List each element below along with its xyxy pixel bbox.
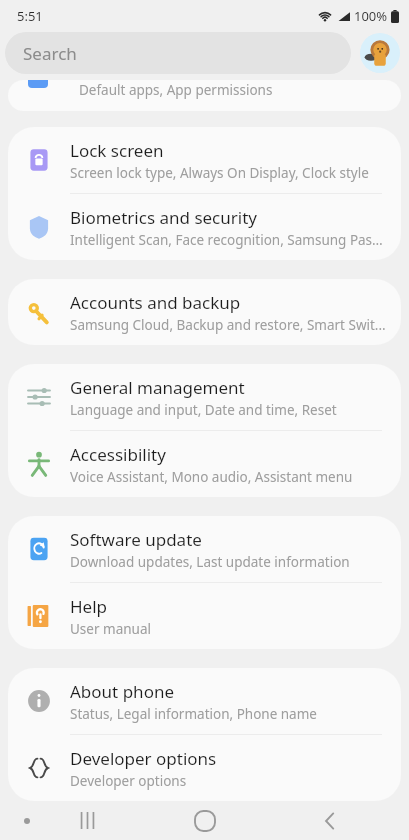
staticText: Accounts and backup — [70, 291, 241, 314]
staticText: Language and input, Date and time, Reset — [70, 401, 337, 419]
staticText: 100% — [354, 7, 388, 25]
button[interactable]: Help — [8, 583, 401, 649]
staticText: About phone — [70, 680, 175, 703]
button[interactable]: Accounts and backup — [8, 279, 401, 345]
button[interactable]: General management — [8, 364, 401, 430]
staticText: User manual — [70, 620, 151, 638]
staticText: Accessibility — [70, 443, 166, 466]
button[interactable]: Default apps, App permissions — [8, 80, 401, 111]
staticText: Search — [23, 42, 77, 65]
button[interactable]: Software update — [8, 516, 401, 582]
staticText: Software update — [70, 528, 202, 551]
staticText: Download updates, Last update informatio… — [70, 553, 350, 571]
staticText: Developer options — [70, 747, 217, 770]
staticText: Developer options — [70, 772, 187, 790]
staticText: Help — [70, 595, 108, 618]
staticText: Samsung Cloud, Backup and restore, Smart… — [70, 316, 386, 334]
button[interactable]: Accessibility — [8, 431, 401, 497]
staticText: Lock screen — [70, 139, 164, 162]
button[interactable]: Account — [360, 33, 400, 73]
staticText: Voice Assistant, Mono audio, Assistant m… — [70, 468, 353, 486]
button[interactable]: Search — [5, 32, 351, 74]
button[interactable]: Biometrics and security — [8, 194, 401, 260]
staticText: Intelligent Scan, Face recognition, Sams… — [70, 231, 387, 249]
button[interactable]: About phone — [8, 668, 401, 734]
staticText: General management — [70, 376, 245, 399]
button[interactable]: Back — [307, 801, 353, 840]
staticText: Screen lock type, Always On Display, Clo… — [70, 164, 369, 182]
staticText: Default apps, App permissions — [79, 81, 273, 99]
staticText: Biometrics and security — [70, 206, 257, 229]
button[interactable]: Lock screen — [8, 127, 401, 193]
staticText: 5:51 — [17, 7, 43, 25]
button[interactable]: Developer options — [8, 735, 401, 801]
staticText: Status, Legal information, Phone name — [70, 705, 317, 723]
button[interactable]: Recents — [64, 801, 110, 840]
button[interactable]: Home — [182, 801, 228, 840]
